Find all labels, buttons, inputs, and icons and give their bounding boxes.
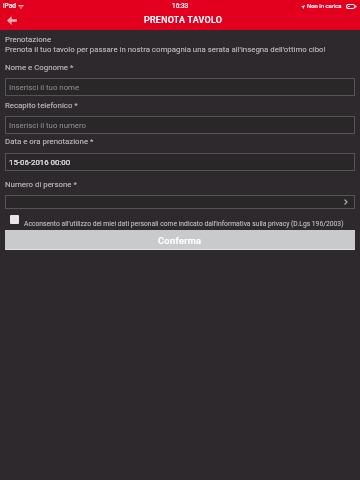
staticText: Non in carica [307, 3, 342, 10]
staticText: Inserisci il tuo numero [9, 121, 87, 130]
staticText: Recapito telefonico * [5, 101, 78, 110]
button[interactable]: Acconsento all'utilizzo dei miei dati pe… [0, 212, 360, 226]
staticText: 15-06-2016 00:00 [9, 158, 71, 167]
staticText: Inserisci il tuo nome [9, 83, 80, 92]
staticText: 16:33 [172, 2, 189, 10]
staticText: Numero di persone * [5, 180, 77, 189]
staticText: Nome e Cognome * [5, 63, 74, 72]
staticText: PRENOTA TAVOLO [144, 15, 223, 25]
staticText: Conferma [158, 235, 202, 246]
button[interactable]: 15-06-2016 00:00 [5, 153, 355, 171]
staticText: Prenota il tuo tavolo per passare in nos… [5, 45, 326, 54]
staticText: Data e ora prenotazione * [5, 137, 94, 146]
button[interactable] [5, 195, 355, 209]
staticText: Prenotazione [5, 35, 52, 44]
button[interactable]: Conferma [5, 230, 355, 250]
staticText: Acconsento all'utilizzo dei miei dati pe… [24, 220, 344, 228]
button[interactable]: Indietro [0, 12, 24, 30]
button[interactable]: Inserisci il tuo numero [5, 116, 355, 134]
staticText: iPad [3, 2, 16, 10]
button[interactable]: Inserisci il tuo nome [5, 78, 355, 96]
